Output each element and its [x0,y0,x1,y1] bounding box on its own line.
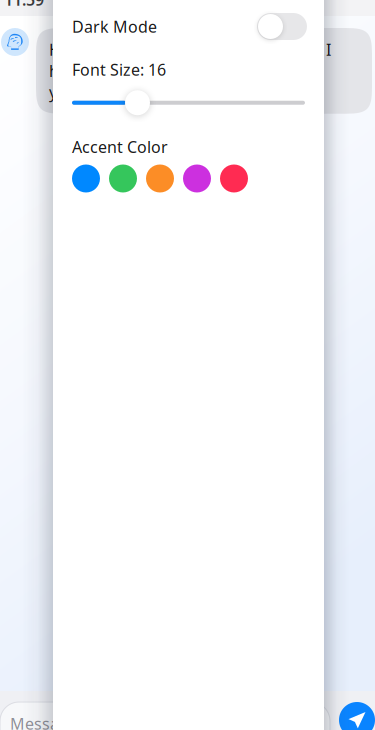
button[interactable]: Orange accent [146,164,174,192]
staticText: Dark Mode [72,16,157,37]
staticText: 11:59 [4,0,44,10]
button[interactable]: Dark Mode [257,13,305,40]
staticText: Accent Color [72,136,168,157]
staticText: Font Size: 16 [72,59,166,80]
button[interactable]: Font size slider [72,90,305,115]
button[interactable]: Green accent [109,164,137,192]
staticText: Hello! I'm your AI assistant. How can I … [49,39,331,103]
button[interactable]: Blue accent [72,164,100,192]
button[interactable]: Red accent [220,164,248,192]
staticText: Message... [10,713,90,730]
button[interactable]: Send [339,702,375,730]
button[interactable]: Purple accent [183,164,211,192]
